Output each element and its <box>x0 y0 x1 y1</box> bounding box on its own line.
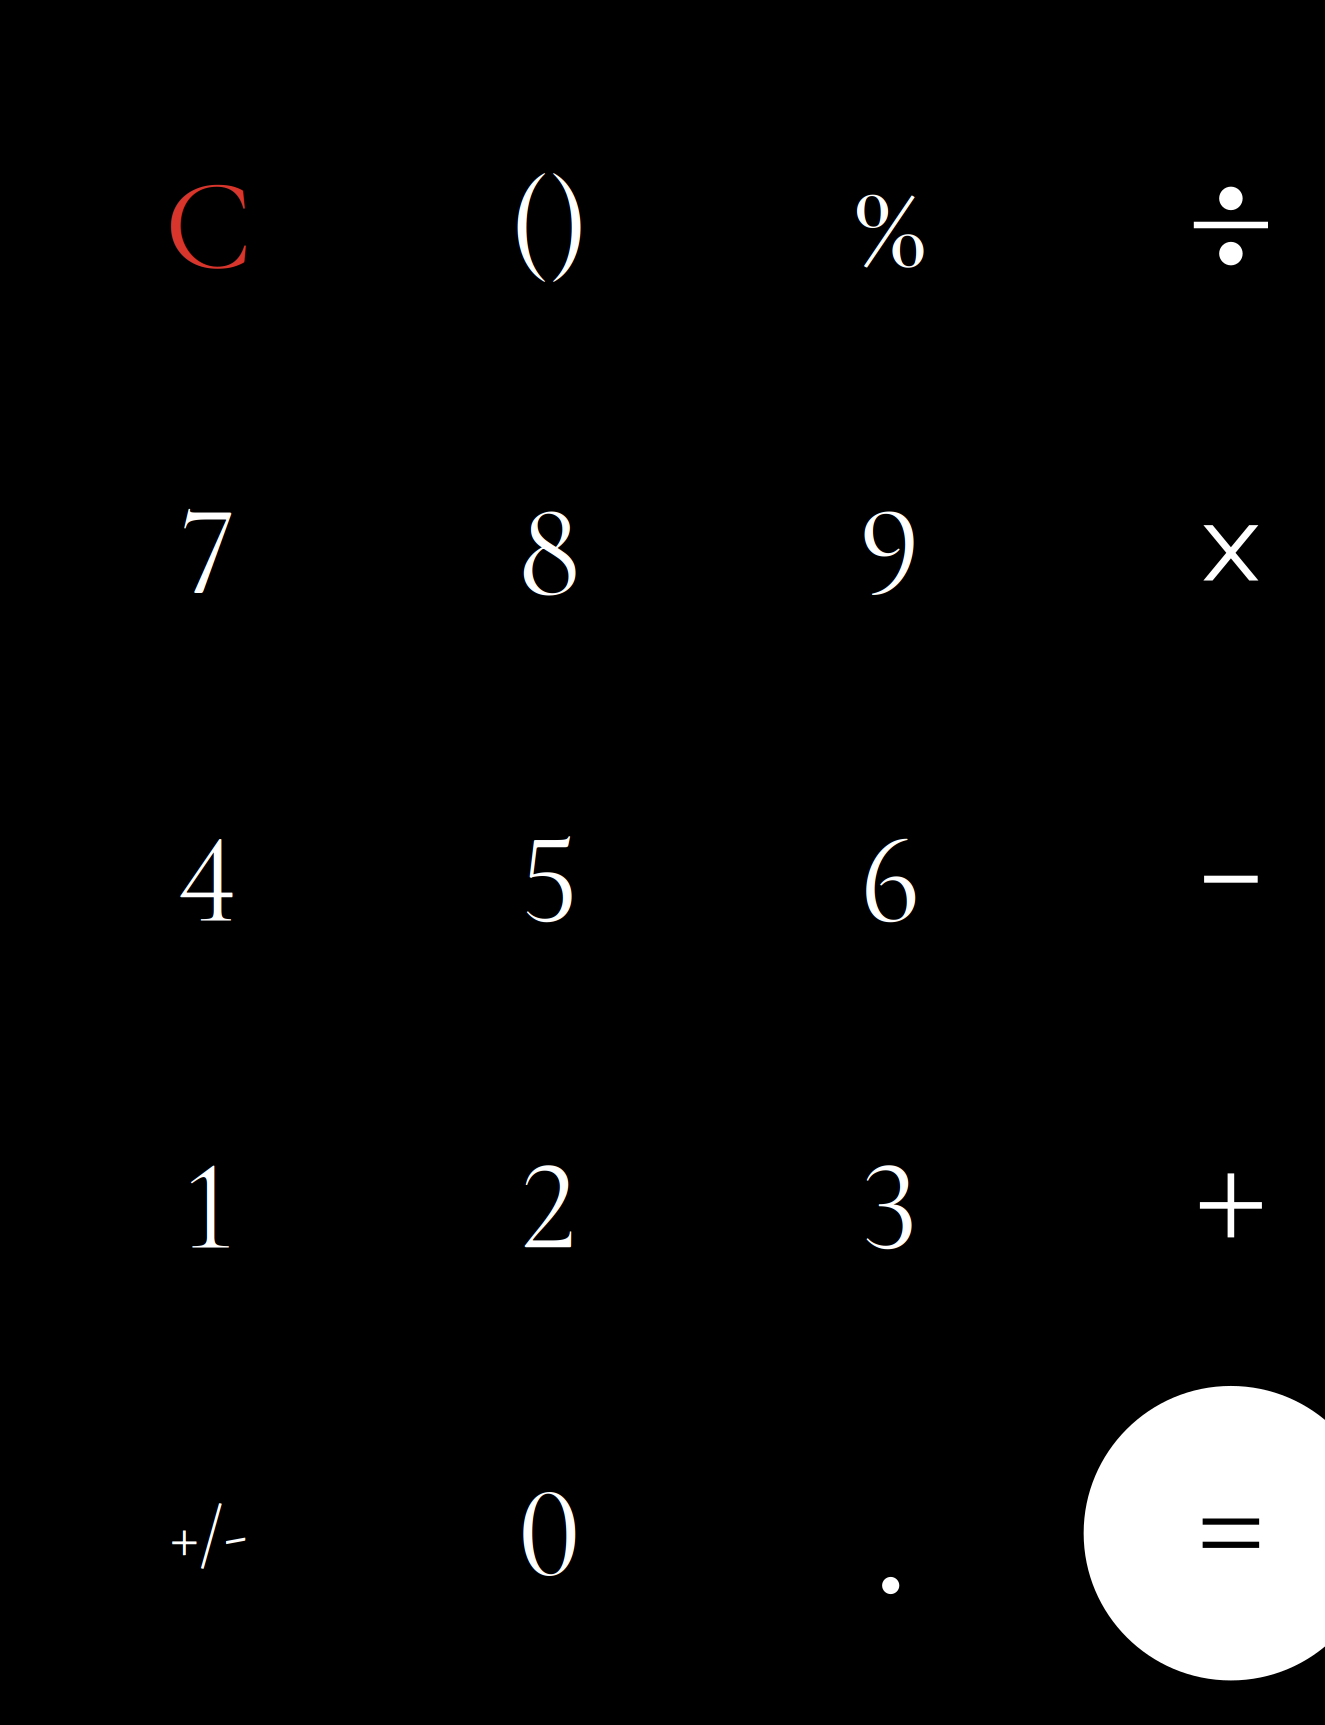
staticText: 3 <box>862 1129 918 1284</box>
staticText: 0 <box>517 1456 581 1611</box>
button[interactable]: Minus <box>1084 732 1325 1027</box>
button[interactable]: Equals <box>1084 1386 1325 1680</box>
button[interactable]: Decimal point <box>743 1386 1037 1680</box>
button[interactable]: 8 <box>402 406 697 700</box>
staticText: 7 <box>181 475 236 630</box>
button[interactable]: Multiply <box>1084 406 1325 700</box>
staticText: 8 <box>518 475 581 630</box>
staticText: % <box>854 148 927 303</box>
button[interactable]: 4 <box>61 732 356 1027</box>
button[interactable]: 6 <box>743 732 1037 1027</box>
staticText: () <box>509 148 589 303</box>
button[interactable]: 0 <box>402 1386 697 1680</box>
button[interactable]: 9 <box>743 406 1037 700</box>
button[interactable]: () <box>402 79 697 373</box>
button[interactable]: % <box>743 79 1037 373</box>
button[interactable]: Divide <box>1084 79 1325 373</box>
button[interactable]: C <box>61 79 356 373</box>
button[interactable]: 5 <box>402 732 697 1027</box>
button[interactable]: Plus <box>1084 1059 1325 1354</box>
button[interactable]: +/- <box>61 1386 356 1680</box>
staticText: 6 <box>859 802 922 957</box>
staticText: 1 <box>183 1129 233 1284</box>
staticText: C <box>164 148 252 303</box>
button[interactable]: 7 <box>61 406 356 700</box>
button[interactable]: 3 <box>743 1059 1037 1354</box>
button[interactable]: 1 <box>61 1059 356 1354</box>
button[interactable]: 2 <box>402 1059 697 1354</box>
staticText: 9 <box>859 475 922 630</box>
staticText: 4 <box>178 802 238 957</box>
staticText: +/- <box>170 1490 247 1577</box>
staticText: 2 <box>521 1129 578 1284</box>
staticText: 5 <box>521 802 578 957</box>
